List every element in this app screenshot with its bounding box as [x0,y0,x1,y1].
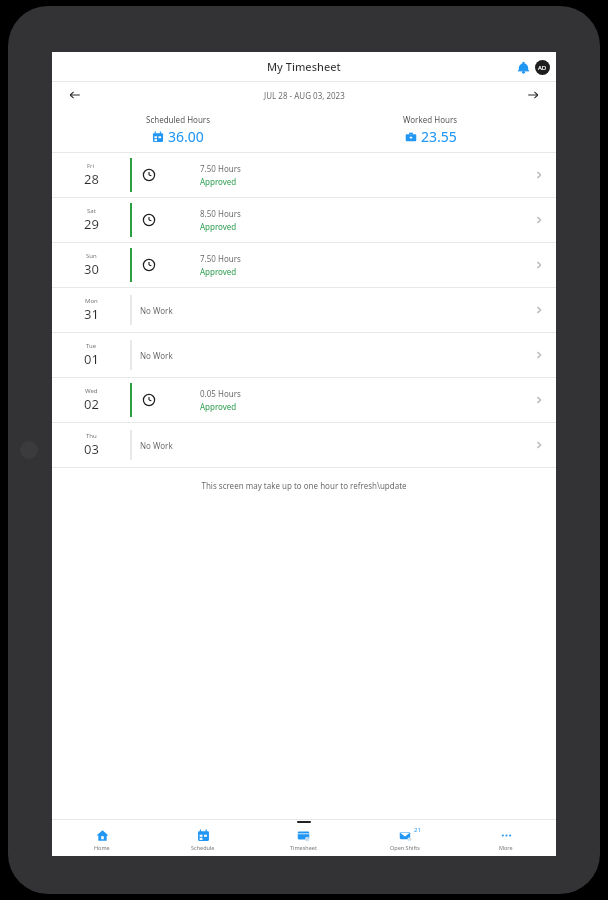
staticText: Thu [86,432,97,440]
staticText: 03 [84,440,99,458]
staticText: Home [94,844,110,851]
staticText: 02 [84,395,99,413]
staticText: 7.50 Hours [200,163,241,174]
button[interactable]: Timesheet [253,820,354,856]
staticText: No Work [140,305,173,316]
staticText: Open Shifts [390,844,420,851]
staticText: Scheduled Hours [146,114,210,125]
button[interactable]: Previous week [64,84,86,106]
staticText: Mon [85,297,98,305]
staticText: Sat [87,207,96,215]
button[interactable]: Mon [52,288,556,332]
staticText: Schedule [191,844,215,851]
staticText: This screen may take up to one hour to r… [52,480,556,491]
staticText: 01 [84,350,99,368]
staticText: 30 [84,260,99,278]
button[interactable]: Schedule [152,820,253,856]
staticText: Timesheet [290,844,317,851]
button[interactable]: Sun [52,243,556,287]
staticText: AD [538,64,547,72]
staticText: JUL 28 - AUG 03, 2023 [264,90,345,101]
staticText: Tue [86,342,97,350]
button[interactable]: Next week [522,84,544,106]
staticText: Approved [200,176,237,187]
staticText: More [499,844,513,851]
button[interactable]: Profile [535,60,550,75]
staticText: No Work [140,350,173,361]
staticText: Worked Hours [403,114,458,125]
staticText: No Work [140,440,173,451]
staticText: 8.50 Hours [200,208,241,219]
staticText: 23.55 [421,127,457,146]
staticText: 36.00 [168,127,204,146]
button[interactable]: Notifications [512,56,534,78]
button[interactable]: Thu [52,423,556,467]
button[interactable]: Home [52,820,152,856]
button[interactable]: Sat [52,198,556,242]
staticText: 31 [84,305,99,323]
staticText: My Timesheet [267,59,341,74]
button[interactable]: Fri [52,153,556,197]
staticText: 7.50 Hours [200,253,241,264]
staticText: Approved [200,401,237,412]
staticText: 21 [414,826,421,834]
staticText: Fri [87,162,95,170]
staticText: Wed [85,387,98,395]
staticText: 28 [84,170,99,188]
button[interactable]: More [455,820,556,856]
button[interactable]: Tue [52,333,556,377]
staticText: 29 [84,215,99,233]
staticText: 0.05 Hours [200,388,241,399]
button[interactable]: 21 [354,820,455,856]
staticText: Approved [200,266,237,277]
staticText: Sun [86,252,97,260]
staticText: Approved [200,221,237,232]
button[interactable]: Wed [52,378,556,422]
